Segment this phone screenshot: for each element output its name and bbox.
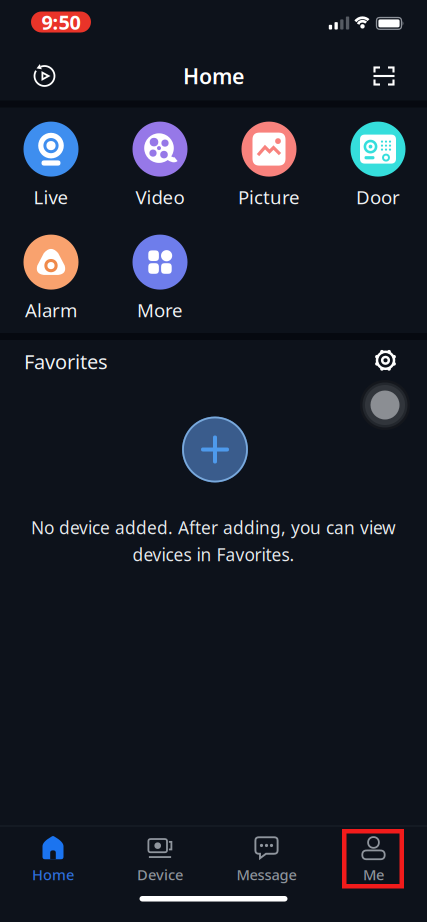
staticText: No device added. After adding, you can v… <box>31 516 396 539</box>
staticText: Home <box>183 62 244 90</box>
staticText: Live <box>33 185 68 209</box>
button[interactable]: Door <box>350 122 405 209</box>
button[interactable]: Add device <box>182 416 248 482</box>
staticText: Door <box>356 185 400 209</box>
button[interactable]: More <box>132 235 187 322</box>
button[interactable]: AssistiveTouch <box>360 380 410 430</box>
staticText: Home <box>32 865 74 884</box>
button[interactable]: Home <box>8 831 98 887</box>
button[interactable]: Device <box>115 831 205 887</box>
staticText: More <box>137 298 183 322</box>
button[interactable]: Video <box>132 122 187 209</box>
button[interactable]: Scan <box>362 54 406 98</box>
staticText: Video <box>135 185 184 209</box>
staticText: 9:50 <box>41 9 80 35</box>
button[interactable]: Playback history <box>22 54 66 98</box>
staticText: Message <box>236 865 296 884</box>
button[interactable]: Message <box>221 831 311 887</box>
staticText: Device <box>137 865 183 884</box>
button[interactable]: Alarm <box>23 235 78 322</box>
button[interactable]: Favorites settings <box>365 340 405 380</box>
staticText: Me <box>363 865 384 884</box>
staticText: Picture <box>238 185 300 209</box>
button[interactable]: Live <box>23 122 78 209</box>
staticText: devices in Favorites. <box>132 543 294 566</box>
staticText: Alarm <box>25 298 77 322</box>
staticText: Favorites <box>24 348 108 375</box>
button[interactable]: Me <box>328 831 418 887</box>
button[interactable]: Picture <box>238 122 300 209</box>
